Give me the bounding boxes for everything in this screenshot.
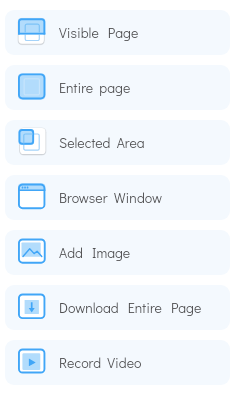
staticText: Record Video — [59, 353, 142, 371]
staticText: Selected Area — [59, 133, 145, 151]
staticText: Browser Window — [59, 188, 162, 206]
button[interactable]: Add Image — [5, 230, 230, 275]
staticText: Download Entire Page — [59, 298, 202, 316]
button[interactable]: Record Video — [5, 340, 230, 385]
staticText: Entire page — [59, 78, 131, 96]
button[interactable]: Selected Area — [5, 120, 230, 165]
button[interactable]: Entire page — [5, 65, 230, 110]
staticText: Visible Page — [59, 23, 139, 41]
staticText: Add Image — [59, 243, 131, 261]
button[interactable]: Browser Window — [5, 175, 230, 220]
button[interactable]: Download Entire Page — [5, 285, 230, 330]
button[interactable]: Visible Page — [5, 10, 230, 55]
